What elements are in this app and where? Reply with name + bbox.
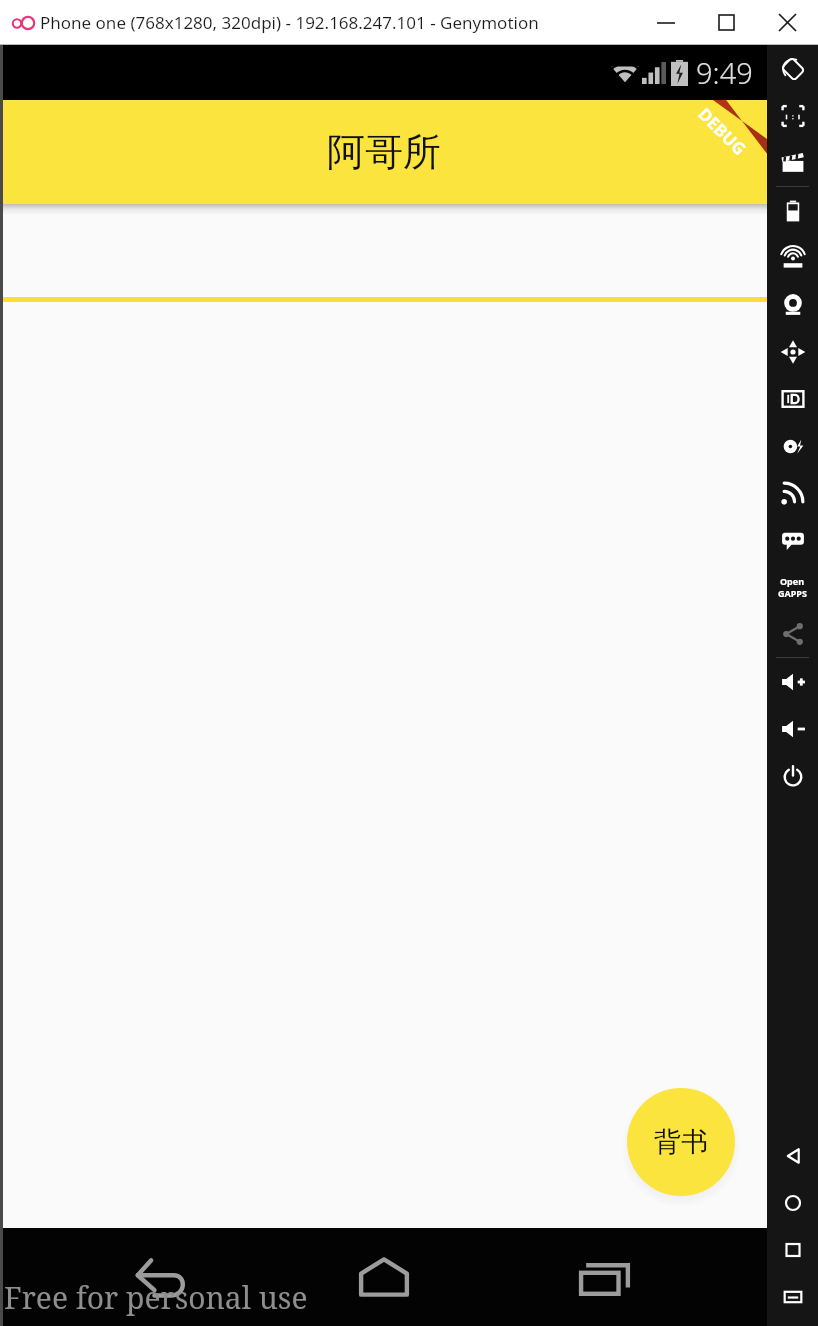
button[interactable]: Back: [102, 1242, 222, 1312]
button[interactable]: Emulator control: [767, 1226, 818, 1273]
button[interactable]: Maximize: [696, 0, 756, 45]
button[interactable]: Emulator control: [767, 187, 818, 234]
button[interactable]: Open GApps: [767, 563, 818, 610]
staticText: GAPPS: [778, 587, 807, 599]
button[interactable]: Emulator control: [767, 375, 818, 422]
button[interactable]: Recent apps: [545, 1242, 665, 1312]
button[interactable]: Emulator control: [767, 328, 818, 375]
button[interactable]: Emulator control: [767, 1179, 818, 1226]
button[interactable]: Close: [756, 0, 818, 45]
staticText: Open: [780, 575, 805, 587]
staticText: DEBUG: [693, 102, 751, 160]
button[interactable]: Emulator control: [767, 705, 818, 752]
staticText: 背书: [654, 1125, 708, 1159]
button[interactable]: Emulator control: [767, 234, 818, 281]
button[interactable]: Emulator control: [767, 469, 818, 516]
button[interactable]: Emulator control: [767, 422, 818, 469]
button[interactable]: Emulator control: [767, 1132, 818, 1179]
button[interactable]: Emulator control: [767, 1273, 818, 1320]
staticText: 阿哥所: [327, 128, 441, 176]
button[interactable]: Emulator control: [767, 610, 818, 657]
staticText: Free for personal use: [4, 1277, 308, 1318]
staticText: Phone one (768x1280, 320dpi) - 192.168.2…: [40, 11, 539, 34]
button[interactable]: Emulator control: [767, 139, 818, 186]
button[interactable]: Emulator control: [767, 658, 818, 705]
button[interactable]: 背书: [627, 1088, 735, 1196]
button[interactable]: Emulator control: [767, 92, 818, 139]
button[interactable]: Emulator control: [767, 516, 818, 563]
button[interactable]: Home: [324, 1242, 444, 1312]
button[interactable]: Minimize: [636, 0, 696, 45]
button[interactable]: Emulator control: [767, 281, 818, 328]
staticText: 9:49: [696, 53, 753, 92]
button[interactable]: Emulator control: [767, 45, 818, 92]
button[interactable]: Emulator control: [767, 752, 818, 799]
